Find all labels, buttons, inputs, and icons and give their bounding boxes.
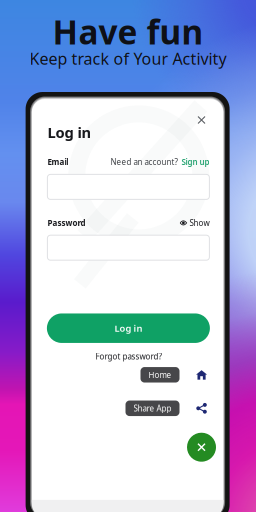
- button[interactable]: Log in: [47, 313, 210, 343]
- button[interactable]: Close: [193, 111, 210, 128]
- button[interactable]: Home: [140, 367, 179, 382]
- button[interactable]: Close menu: [187, 433, 216, 462]
- button[interactable]: Home: [190, 363, 213, 386]
- staticText: Home: [148, 369, 171, 380]
- staticText: Email: [47, 157, 68, 167]
- staticText: Have fun: [52, 9, 203, 54]
- staticText: Show: [189, 218, 209, 228]
- staticText: Log in: [114, 322, 142, 334]
- button[interactable]: Share App: [125, 400, 179, 416]
- button[interactable]: Show: [180, 218, 209, 228]
- button[interactable]: Share App: [190, 396, 213, 420]
- staticText: Log in: [47, 123, 91, 142]
- staticText: Keep track of Your Activity: [29, 48, 226, 69]
- button[interactable]: Forgot password?: [47, 348, 209, 365]
- button[interactable]: Sign up: [177, 157, 209, 167]
- staticText: Forgot password?: [95, 351, 161, 362]
- staticText: Password: [47, 218, 85, 228]
- staticText: Need an account?: [110, 157, 177, 167]
- staticText: Sign up: [181, 157, 209, 167]
- staticText: Share App: [133, 403, 171, 414]
